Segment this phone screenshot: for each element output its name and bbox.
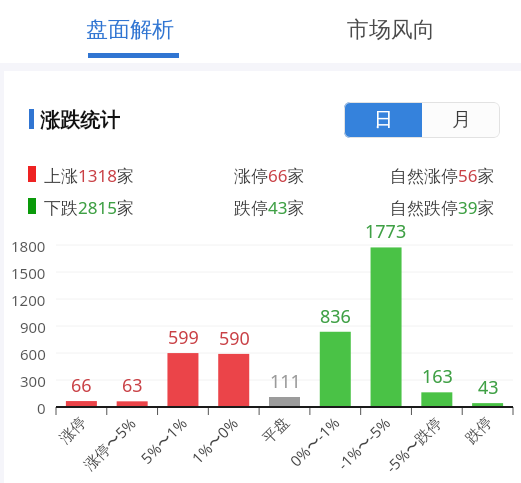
button[interactable]: 下跌2815家 (44, 196, 134, 219)
staticText: 163 (422, 364, 453, 389)
staticText: 599 (168, 325, 199, 350)
staticText: 1773 (365, 219, 407, 244)
staticText: 0 (37, 398, 46, 418)
staticText: 0%〜-1% (285, 413, 343, 471)
other: 涨跌分布柱状图 (0, 0, 521, 483)
staticText: 5%〜1% (136, 413, 191, 468)
button[interactable]: 上涨1318家 (44, 164, 134, 187)
staticText: 自然涨停56家 (390, 164, 495, 187)
staticText: 111 (270, 369, 301, 394)
staticText: 836 (320, 304, 351, 329)
staticText: 涨跌统计 (40, 108, 120, 133)
staticText: 66 (71, 373, 92, 398)
staticText: 1500 (11, 263, 46, 283)
staticText: 自然跌停39家 (390, 196, 495, 219)
staticText: 平盘 (259, 413, 293, 448)
button[interactable]: 自然涨停56家 (390, 164, 495, 187)
staticText: 下跌2815家 (44, 196, 134, 219)
staticText: 1200 (11, 290, 46, 310)
button[interactable]: 涨停66家 (234, 164, 305, 187)
staticText: 上涨1318家 (44, 164, 134, 187)
staticText: 300 (20, 371, 46, 391)
staticText: 900 (20, 317, 46, 337)
staticText: 590 (219, 326, 250, 351)
staticText: 43 (478, 375, 499, 400)
staticText: -5%〜跌停 (381, 413, 445, 477)
button[interactable]: 盘面解析 (0, 0, 260, 63)
button[interactable]: 市场风向 (260, 0, 521, 63)
button[interactable]: 月 (422, 102, 500, 138)
staticText: 涨停66家 (234, 164, 305, 187)
staticText: 日 (374, 108, 393, 132)
button[interactable]: 跌停43家 (234, 196, 305, 219)
staticText: 跌停 (462, 413, 496, 448)
staticText: 盘面解析 (86, 16, 174, 44)
staticText: 跌停43家 (234, 196, 305, 219)
staticText: 涨停 (56, 413, 90, 448)
staticText: 63 (122, 373, 143, 398)
staticText: 1%〜0% (187, 413, 242, 468)
staticText: 600 (20, 344, 46, 364)
staticText: -1%〜-5% (333, 413, 394, 474)
button[interactable]: 自然跌停39家 (390, 196, 495, 219)
staticText: 市场风向 (347, 16, 435, 44)
button[interactable]: 日 (344, 102, 422, 138)
staticText: 1800 (11, 236, 46, 256)
staticText: 月 (452, 108, 471, 132)
staticText: 涨停〜5% (79, 413, 140, 474)
